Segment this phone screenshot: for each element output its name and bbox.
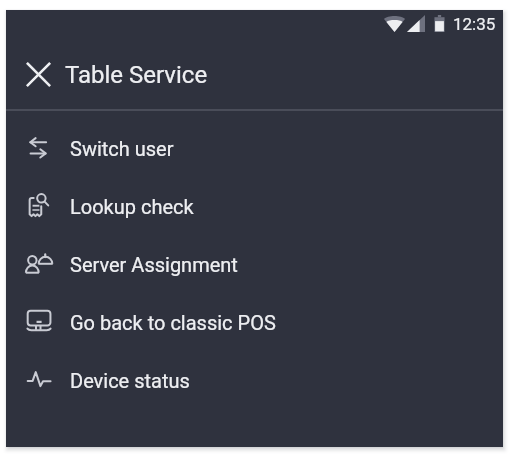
staticText: Table Service (65, 61, 208, 89)
button[interactable]: Close (14, 50, 62, 98)
staticText: Go back to classic POS (70, 311, 276, 334)
button[interactable]: Go back to classic POS (6, 293, 503, 351)
button[interactable]: Switch user (6, 119, 503, 177)
button[interactable]: Device status (6, 351, 503, 409)
button[interactable]: Server Assignment (6, 235, 503, 293)
staticText: 12:35 (453, 14, 496, 32)
button[interactable]: Lookup check (6, 177, 503, 235)
staticText: Server Assignment (70, 253, 238, 276)
staticText: Device status (70, 369, 190, 392)
staticText: Lookup check (70, 195, 194, 218)
staticText: Switch user (70, 137, 174, 160)
